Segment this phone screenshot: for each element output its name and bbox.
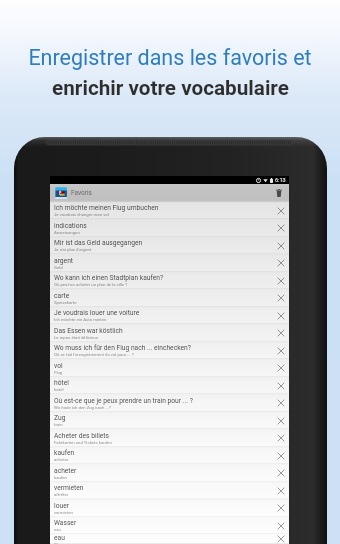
staticText: Ich möchte ein Auto mieten bbox=[54, 317, 107, 322]
button[interactable]: Remove from favorites bbox=[272, 237, 289, 254]
button[interactable]: kaufen bbox=[50, 447, 289, 464]
button[interactable]: Remove from favorites bbox=[272, 324, 289, 342]
staticText: indications bbox=[54, 222, 87, 230]
button[interactable]: Remove from favorites bbox=[272, 254, 289, 272]
staticText: carte bbox=[54, 292, 70, 300]
button[interactable]: Das Essen war köstlich bbox=[50, 324, 289, 342]
staticText: acheter bbox=[54, 467, 77, 475]
staticText: Le repas était délicieux bbox=[54, 335, 98, 340]
button[interactable]: Remove from favorites bbox=[272, 429, 289, 447]
staticText: Favoris bbox=[71, 189, 92, 197]
staticText: Je n'ai plus d'argent bbox=[54, 247, 92, 252]
staticText: Wo kann ich einen Stadtplan kaufen? bbox=[54, 274, 164, 282]
staticText: Mir ist das Geld ausgegangen bbox=[54, 239, 143, 247]
staticText: Wasser bbox=[54, 519, 77, 527]
button[interactable]: Remove from favorites bbox=[272, 342, 289, 359]
button[interactable]: Wo kann ich einen Stadtplan kaufen? bbox=[50, 272, 289, 289]
staticText: Wasser bbox=[54, 542, 69, 544]
button[interactable]: Remove from favorites bbox=[272, 447, 289, 464]
staticText: Das Essen war köstlich bbox=[54, 327, 123, 335]
staticText: train bbox=[54, 422, 63, 427]
button[interactable]: Où est-ce que je peux prendre un train p… bbox=[50, 394, 289, 412]
staticText: Où est-ce que je peux prendre un train p… bbox=[54, 397, 193, 405]
staticText: Zug bbox=[54, 414, 66, 422]
staticText: kaufen bbox=[54, 449, 75, 457]
staticText: Où se fait l'enregistrement du vol pour … bbox=[54, 352, 134, 357]
button[interactable]: Remove from favorites bbox=[272, 219, 289, 237]
staticText: enrichir votre vocabulaire bbox=[52, 76, 289, 100]
button[interactable]: Remove from favorites bbox=[272, 534, 289, 544]
button[interactable]: Remove from favorites bbox=[272, 202, 289, 219]
button[interactable]: Mir ist das Geld ausgegangen bbox=[50, 237, 289, 254]
staticText: Wo finde ich den Zug nach ...? bbox=[54, 405, 111, 410]
staticText: louer bbox=[54, 502, 69, 510]
button[interactable]: Remove from favorites bbox=[272, 412, 289, 429]
button[interactable]: hôtel bbox=[50, 377, 289, 394]
button[interactable]: acheter bbox=[50, 464, 289, 482]
staticText: eau bbox=[54, 534, 65, 542]
staticText: acheter bbox=[54, 457, 69, 462]
button[interactable]: carte bbox=[50, 289, 289, 307]
staticText: Flug bbox=[54, 370, 63, 375]
button[interactable]: louer bbox=[50, 499, 289, 517]
button[interactable]: Remove from favorites bbox=[272, 377, 289, 394]
button[interactable]: Wo muss ich für den Flug nach ... einche… bbox=[50, 342, 289, 359]
staticText: Wo muss ich für den Flug nach ... einche… bbox=[54, 344, 191, 352]
button[interactable]: Remove from favorites bbox=[272, 289, 289, 307]
button[interactable]: eau bbox=[50, 534, 289, 544]
staticText: affréter bbox=[54, 492, 69, 497]
button[interactable]: vermieten bbox=[50, 482, 289, 499]
staticText: hotel bbox=[54, 387, 64, 392]
button[interactable]: Wasser bbox=[50, 517, 289, 534]
staticText: argent bbox=[54, 257, 74, 265]
button[interactable]: Ich möchte meinen Flug umbuchen bbox=[50, 202, 289, 219]
staticText: vol bbox=[54, 362, 63, 370]
button[interactable]: vol bbox=[50, 359, 289, 377]
staticText: Enregistrer dans les favoris et bbox=[28, 45, 312, 70]
staticText: vermieten bbox=[54, 484, 84, 492]
staticText: Fahrkarten und Tickets kaufen bbox=[54, 440, 112, 445]
button[interactable]: Remove from favorites bbox=[272, 482, 289, 499]
staticText: kaufen bbox=[54, 475, 67, 480]
button[interactable]: Je voudrais louer une voiture bbox=[50, 307, 289, 324]
button[interactable]: indications bbox=[50, 219, 289, 237]
button[interactable]: argent bbox=[50, 254, 289, 272]
staticText: eau bbox=[54, 527, 61, 532]
button[interactable]: Remove from favorites bbox=[272, 307, 289, 324]
staticText: Ich möchte meinen Flug umbuchen bbox=[54, 204, 159, 212]
staticText: Speisekarte bbox=[54, 300, 77, 305]
button[interactable]: Remove from favorites bbox=[272, 394, 289, 412]
staticText: Geld bbox=[54, 265, 63, 270]
staticText: hôtel bbox=[54, 379, 69, 387]
button[interactable]: Remove from favorites bbox=[272, 464, 289, 482]
staticText: vermieten bbox=[54, 510, 73, 515]
staticText: Anweisungen bbox=[54, 230, 80, 235]
staticText: Où peut-on acheter un plan de la ville ? bbox=[54, 282, 128, 287]
button[interactable]: Zug bbox=[50, 412, 289, 429]
button[interactable]: Remove from favorites bbox=[272, 359, 289, 377]
button[interactable]: Remove from favorites bbox=[272, 272, 289, 289]
button[interactable]: Remove from favorites bbox=[272, 517, 289, 534]
button[interactable]: Delete all favorites bbox=[272, 184, 286, 202]
staticText: Je voudrais changer mon vol bbox=[54, 212, 109, 217]
button[interactable]: Remove from favorites bbox=[272, 499, 289, 517]
staticText: 6:13 bbox=[275, 177, 286, 183]
staticText: Acheter des billets bbox=[54, 432, 109, 440]
button[interactable]: Acheter des billets bbox=[50, 429, 289, 447]
staticText: Je voudrais louer une voiture bbox=[54, 309, 140, 317]
